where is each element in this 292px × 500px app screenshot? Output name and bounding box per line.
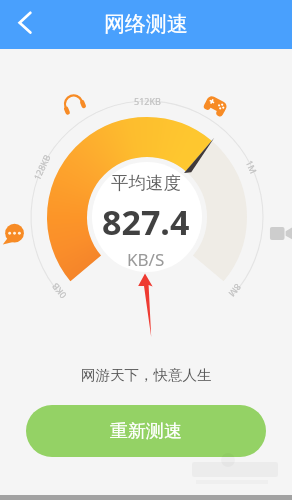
- staticText: 网络测速: [104, 11, 188, 37]
- staticText: 1M: [244, 158, 260, 176]
- staticText: 网游天下，快意人生: [81, 366, 212, 384]
- staticText: 8M: [226, 282, 244, 300]
- staticText: 512KB: [134, 95, 161, 107]
- button[interactable]: Games: [199, 88, 233, 122]
- staticText: 0KB: [48, 281, 68, 301]
- staticText: 重新测速: [110, 420, 182, 443]
- button[interactable]: 重新测速: [26, 405, 266, 457]
- button[interactable]: Back: [3, 0, 47, 46]
- staticText: KB/S: [127, 248, 165, 271]
- button[interactable]: Video: [268, 220, 292, 248]
- staticText: 128KB: [30, 152, 53, 182]
- staticText: 827.4: [102, 199, 190, 245]
- button[interactable]: Music: [57, 88, 91, 122]
- button[interactable]: Chat: [1, 221, 27, 247]
- staticText: 平均速度: [111, 172, 181, 194]
